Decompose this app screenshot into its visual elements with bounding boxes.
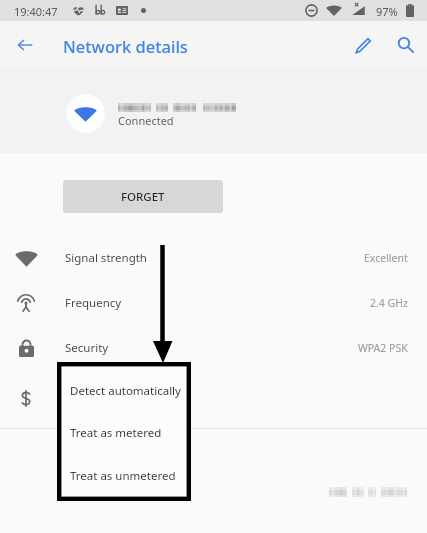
staticText: FORGET <box>121 189 165 205</box>
staticText: Excellent <box>364 251 408 265</box>
staticText: Frequency <box>65 295 122 311</box>
staticText: Treat as unmetered <box>70 468 176 484</box>
button[interactable]: Security <box>0 326 427 370</box>
staticText: 97% <box>376 4 398 19</box>
staticText: Treat as metered <box>70 425 162 441</box>
staticText: Network details <box>63 35 188 57</box>
staticText: Connected <box>118 113 174 128</box>
button[interactable]: Connected <box>66 94 236 133</box>
button[interactable]: Frequency <box>0 281 427 325</box>
button[interactable]: Edit <box>339 21 387 67</box>
button[interactable]: FORGET <box>63 180 223 213</box>
button[interactable]: Signal strength <box>0 236 427 280</box>
staticText: 19:40:47 <box>14 4 58 19</box>
button[interactable]: Treat as unmetered <box>61 456 187 496</box>
button[interactable] <box>0 376 427 420</box>
button[interactable]: Back <box>1 21 49 67</box>
staticText: 2.4 GHz <box>370 296 408 310</box>
button[interactable]: Search <box>381 21 427 67</box>
staticText: Signal strength <box>65 250 147 266</box>
button[interactable]: Treat as metered <box>61 413 187 453</box>
button[interactable]: Detect automatically <box>61 371 187 411</box>
staticText: Detect automatically <box>70 383 181 399</box>
staticText: WPA2 PSK <box>358 341 408 355</box>
staticText: Security <box>65 340 109 356</box>
